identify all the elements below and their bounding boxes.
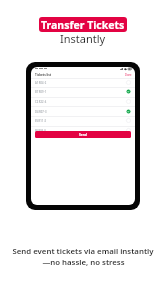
- other: Ticket sent: [126, 89, 131, 94]
- staticText: E5 R11 ·2: [35, 119, 47, 123]
- staticText: D4 R07 ·3: [35, 110, 47, 114]
- staticText: Transfer Tickets: [41, 18, 125, 32]
- staticText: Tickets list: [35, 73, 52, 77]
- staticText: Done: [125, 73, 132, 77]
- staticText: Instantly: [60, 31, 106, 46]
- button[interactable]: E5 R11 ·2: [35, 116, 131, 125]
- button[interactable]: Transfer Tickets: [39, 17, 127, 32]
- staticText: C2 R22 ·4: [35, 100, 47, 104]
- staticText: Send event tickets via email instantly: [12, 246, 154, 257]
- button[interactable]: B7 R09 ·1: [35, 87, 131, 96]
- button[interactable]: F8 R06 ·5: [35, 126, 131, 135]
- button[interactable]: Done: [125, 73, 132, 77]
- button[interactable]: A1 R04 ·2: [35, 78, 131, 87]
- staticText: B7 R09 ·1: [35, 90, 47, 94]
- staticText: Send: [79, 133, 87, 137]
- staticText: —no hassle, no stress: [42, 257, 125, 268]
- button[interactable]: D4 R07 ·3: [35, 107, 131, 116]
- staticText: A1 R04 ·2: [35, 81, 47, 85]
- button[interactable]: Send: [35, 131, 131, 138]
- button[interactable]: C2 R22 ·4: [35, 97, 131, 106]
- staticText: F8 R06 ·5: [35, 129, 46, 133]
- other: Ticket sent: [126, 109, 131, 114]
